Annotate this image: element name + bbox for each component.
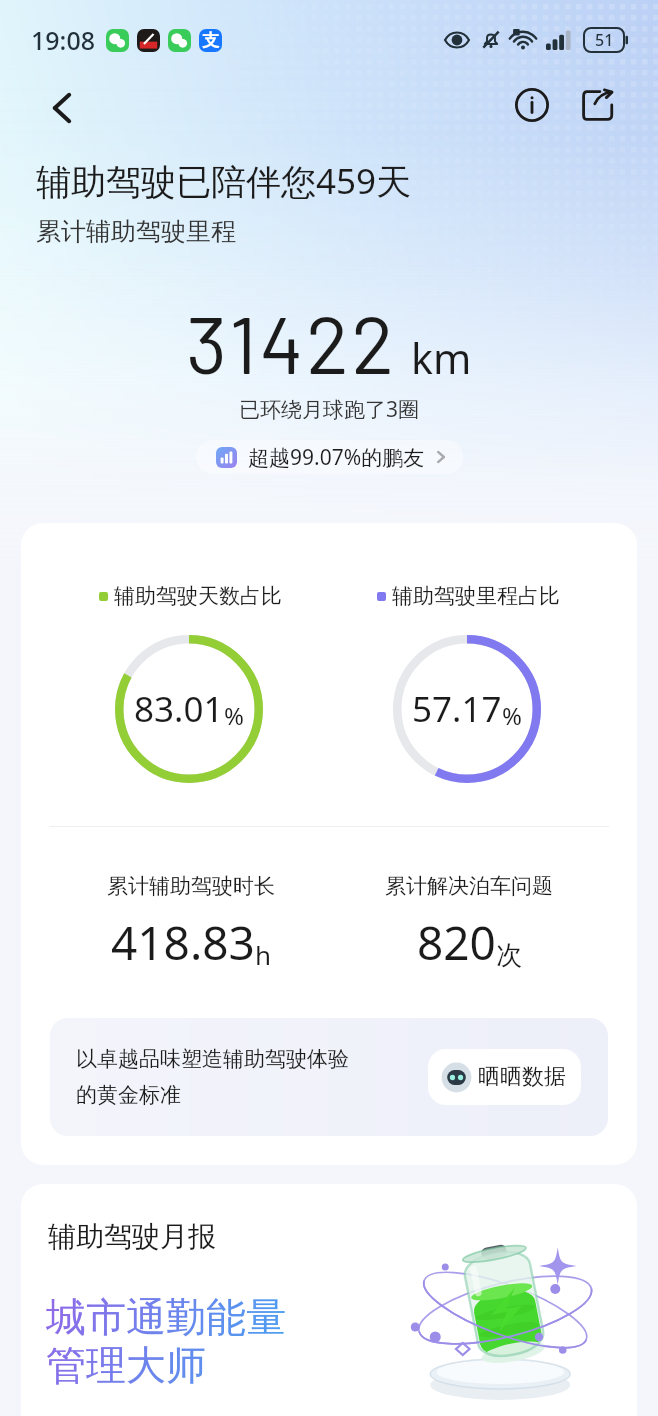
staticText: 累计辅助驾驶里程 [36, 216, 236, 247]
staticText: 820 [417, 911, 496, 974]
staticText: 城市通勤能量 管理大师 [46, 1292, 286, 1391]
staticText: 31422 [186, 294, 397, 390]
staticText: 以卓越品味塑造辅助驾驶体验 的黄金标准 [76, 1046, 349, 1108]
staticText: % [502, 699, 522, 732]
staticText: 次 [496, 939, 522, 972]
staticText: % [224, 699, 244, 732]
staticText: h [255, 937, 272, 972]
button[interactable]: Info [509, 82, 555, 128]
staticText: 晒晒数据 [478, 1063, 566, 1091]
staticText: 83.01 [134, 685, 224, 733]
staticText: 辅助驾驶已陪伴您459天 [36, 157, 412, 205]
button[interactable]: Share [575, 82, 621, 128]
button[interactable]: Back [40, 86, 84, 130]
staticText: 累计解决泊车问题 [385, 873, 553, 899]
staticText: 辅助驾驶天数占比 [114, 583, 282, 609]
staticText: 19:08 [31, 23, 96, 57]
staticText: 418.83 [111, 911, 255, 974]
staticText: 支 [202, 30, 219, 51]
staticText: 辅助驾驶月报 [48, 1219, 216, 1254]
staticText: 51 [595, 29, 614, 51]
staticText: 超越99.07%的鹏友 [248, 443, 425, 472]
staticText: 累计辅助驾驶时长 [107, 873, 275, 899]
button[interactable]: 晒晒数据 [428, 1049, 581, 1105]
staticText: 辅助驾驶里程占比 [392, 583, 560, 609]
staticText: km [411, 330, 472, 386]
button[interactable]: 辅助驾驶月报 [21, 1184, 637, 1416]
button[interactable]: 超越99.07%的鹏友 [196, 440, 463, 474]
staticText: 已环绕月球跑了3圈 [239, 395, 420, 424]
staticText: 57.17 [412, 685, 502, 733]
